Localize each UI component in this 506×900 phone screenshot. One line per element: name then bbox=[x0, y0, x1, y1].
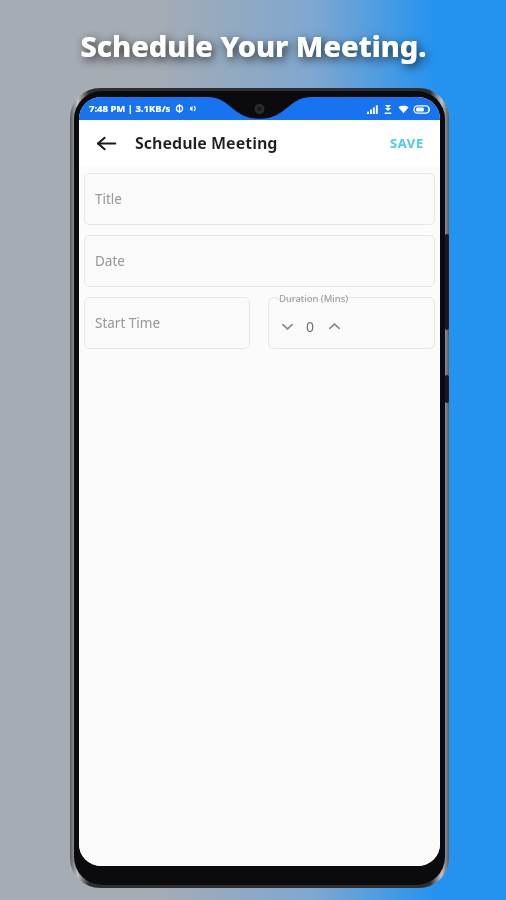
button[interactable]: Date bbox=[84, 235, 435, 287]
staticText: SAVE bbox=[390, 134, 424, 152]
button[interactable]: SAVE bbox=[384, 128, 430, 158]
staticText: Date bbox=[95, 252, 125, 270]
button[interactable]: Start Time bbox=[84, 297, 250, 349]
staticText: Start Time bbox=[95, 314, 161, 332]
staticText: Title bbox=[95, 190, 122, 208]
button[interactable]: Decrease duration bbox=[274, 313, 300, 339]
button[interactable]: Increase duration bbox=[321, 313, 347, 339]
staticText: Duration (Mins) bbox=[279, 292, 349, 305]
button[interactable]: Back bbox=[89, 126, 123, 160]
staticText: Schedule Meeting bbox=[135, 132, 278, 154]
staticText: 0 bbox=[306, 317, 315, 336]
staticText: 7:48 PM | 3.1KB/s bbox=[89, 102, 171, 115]
staticText: Schedule Your Meeting. bbox=[80, 26, 427, 65]
button[interactable]: Title bbox=[84, 173, 435, 225]
